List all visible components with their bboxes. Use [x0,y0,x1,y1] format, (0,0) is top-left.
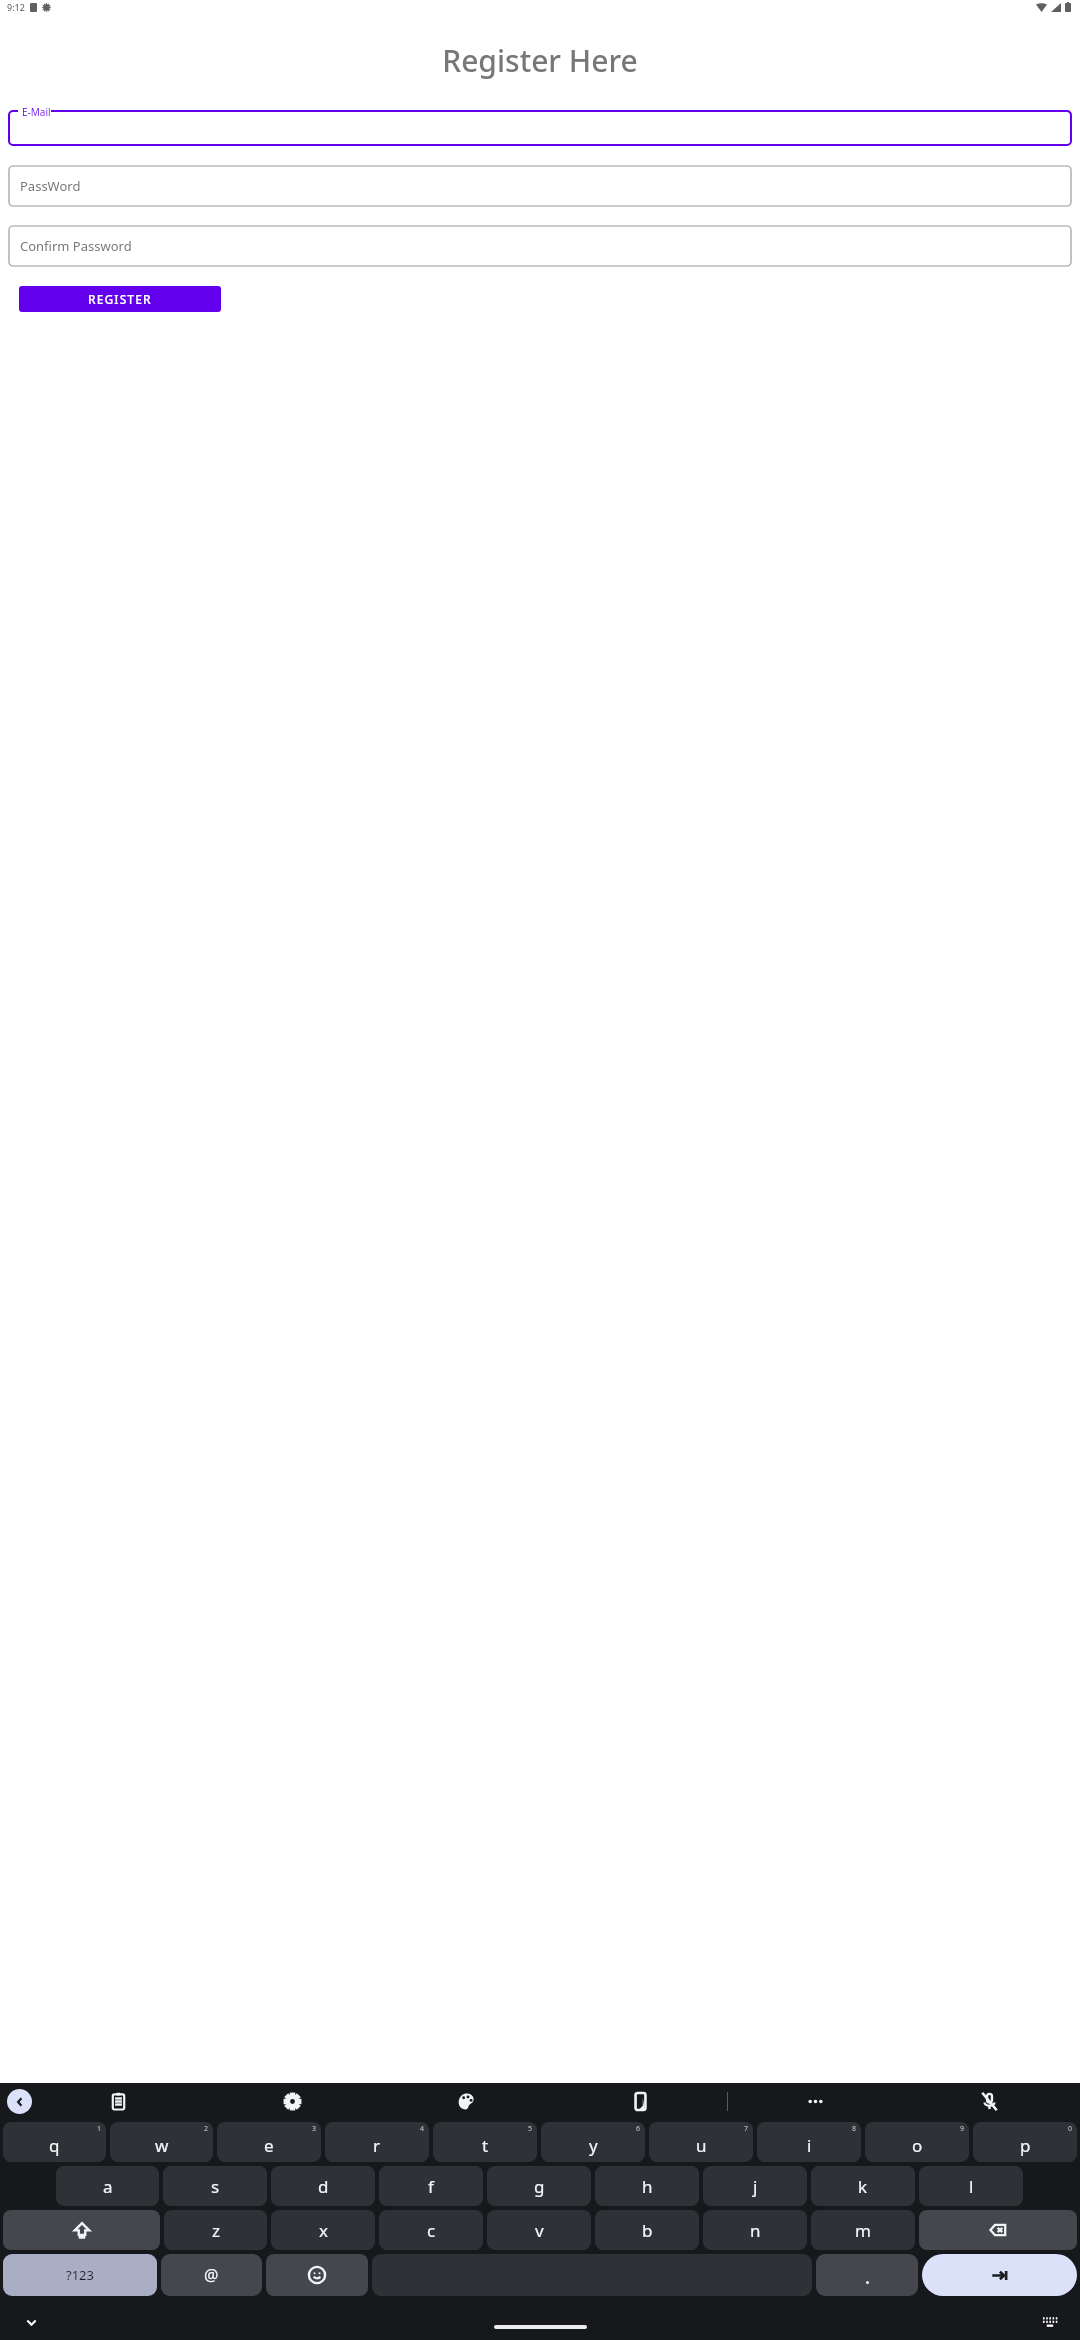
button[interactable]: Emoji [266,2254,368,2296]
button[interactable]: k [811,2166,915,2206]
staticText: 9:12 [7,1,25,13]
button[interactable]: Shift [3,2210,160,2250]
staticText: Confirm Password [20,237,132,255]
button[interactable]: z [164,2210,267,2250]
button[interactable]: f [379,2166,483,2206]
staticText: e [264,2134,274,2157]
staticText: q [49,2134,60,2157]
staticText: 2 [204,2124,209,2134]
staticText: d [318,2175,329,2198]
staticText: b [642,2219,653,2242]
button[interactable]: Backspace [919,2210,1077,2250]
button[interactable] [816,2254,918,2296]
staticText: z [212,2219,220,2242]
staticText: 9 [960,2124,965,2134]
staticText: a [103,2175,113,2198]
staticText: 0 [1068,2124,1073,2134]
staticText: w [155,2134,169,2157]
staticText: c [427,2219,436,2242]
button[interactable]: c [379,2210,483,2250]
staticText: 5 [528,2124,533,2134]
button[interactable]: Themes [379,2083,553,2120]
button[interactable]: 0 [973,2122,1077,2162]
button[interactable]: 6 [541,2122,645,2162]
button[interactable]: 2 [110,2122,213,2162]
button[interactable]: Switch keyboard [1040,2312,1060,2332]
staticText: PassWord [20,177,81,195]
staticText: @ [204,2264,219,2286]
staticText: ?123 [66,2266,94,2284]
button[interactable]: Back [7,2089,32,2114]
button[interactable]: More options [728,2083,902,2120]
staticText: y [589,2134,598,2157]
staticText: 3 [312,2124,317,2134]
staticText: v [535,2219,544,2242]
button[interactable]: m [811,2210,915,2250]
staticText: i [807,2134,812,2157]
staticText: n [750,2219,761,2242]
staticText: E-Mail [22,105,51,119]
staticText: p [1020,2134,1031,2157]
staticText: 6 [636,2124,641,2134]
staticText: s [211,2175,220,2198]
button[interactable]: E-Mail [9,107,1071,145]
staticText: x [319,2219,328,2242]
staticText: 4 [420,2124,425,2134]
button[interactable]: Hide keyboard [20,2311,42,2333]
button[interactable]: a [56,2166,159,2206]
button[interactable]: ?123 [3,2254,157,2296]
staticText: r [373,2134,381,2157]
staticText: f [428,2175,434,2198]
button[interactable]: n [703,2210,807,2250]
button[interactable]: x [271,2210,375,2250]
button[interactable]: Confirm Password [9,226,1071,266]
staticText: Register Here [0,40,1080,81]
staticText: o [912,2134,923,2157]
button[interactable]: 7 [649,2122,753,2162]
staticText: 7 [744,2124,749,2134]
button[interactable]: 5 [433,2122,537,2162]
button[interactable]: j [703,2166,807,2206]
button[interactable]: b [595,2210,699,2250]
button[interactable]: Voice input off [902,2083,1076,2120]
button[interactable]: 8 [757,2122,861,2162]
staticText: l [969,2175,974,2198]
button[interactable]: PassWord [9,166,1071,206]
button[interactable]: Next [922,2254,1077,2296]
button[interactable]: d [271,2166,375,2206]
staticText: 1 [97,2124,102,2134]
staticText: g [534,2175,545,2198]
button[interactable]: 9 [865,2122,969,2162]
button[interactable]: 1 [3,2122,106,2162]
staticText: h [642,2175,653,2198]
button[interactable]: Settings [205,2083,379,2120]
button[interactable]: At sign [161,2254,262,2296]
button[interactable]: One handed mode [553,2083,727,2120]
button[interactable]: g [487,2166,591,2206]
button[interactable]: REGISTER [19,286,221,312]
button[interactable]: v [487,2210,591,2250]
button[interactable]: s [163,2166,267,2206]
button[interactable]: 4 [325,2122,429,2162]
staticText: k [858,2175,868,2198]
staticText: REGISTER [88,291,152,307]
button[interactable]: h [595,2166,699,2206]
staticText: u [696,2134,707,2157]
staticText: 8 [852,2124,857,2134]
staticText: j [753,2175,758,2198]
button[interactable]: Clipboard [32,2083,205,2120]
button[interactable]: 3 [217,2122,321,2162]
button[interactable]: l [919,2166,1023,2206]
staticText: m [855,2219,871,2242]
staticText: t [482,2134,489,2157]
